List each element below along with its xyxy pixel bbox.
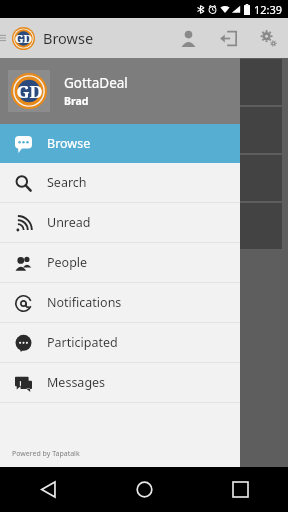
button[interactable]: Messages	[0, 363, 240, 402]
staticText: Search	[47, 174, 87, 191]
button[interactable]: Unread	[0, 203, 240, 242]
staticText: Notifications	[47, 294, 122, 311]
staticText: GD	[15, 31, 32, 46]
button[interactable]: People	[0, 243, 240, 282]
staticText: Participated	[47, 334, 118, 351]
staticText: People	[47, 254, 88, 271]
button[interactable]: Profile	[168, 18, 208, 58]
button[interactable]: Browse	[0, 124, 240, 163]
staticText: Messages	[47, 374, 106, 391]
staticText: GottaDeal	[64, 74, 128, 92]
button[interactable]: GD	[0, 58, 240, 124]
button[interactable]: Participated	[0, 323, 240, 362]
staticText: Browse	[43, 28, 94, 48]
button[interactable]: Notifications	[0, 283, 240, 322]
staticText: Brad	[64, 94, 89, 108]
staticText: Unread	[47, 214, 91, 231]
button[interactable]: Recent apps	[192, 467, 288, 512]
button[interactable]: Back	[0, 467, 96, 512]
button[interactable]: Search	[0, 163, 240, 202]
staticText: Powered by Tapatalk	[12, 449, 80, 459]
staticText: Browse	[47, 135, 91, 152]
staticText: GD	[16, 80, 43, 103]
staticText: 12:39	[254, 2, 283, 17]
button[interactable]: Settings	[248, 18, 288, 58]
button[interactable]: Open navigation drawer	[0, 18, 6, 58]
button[interactable]: Sign out	[208, 18, 248, 58]
button[interactable]: Home	[96, 467, 192, 512]
